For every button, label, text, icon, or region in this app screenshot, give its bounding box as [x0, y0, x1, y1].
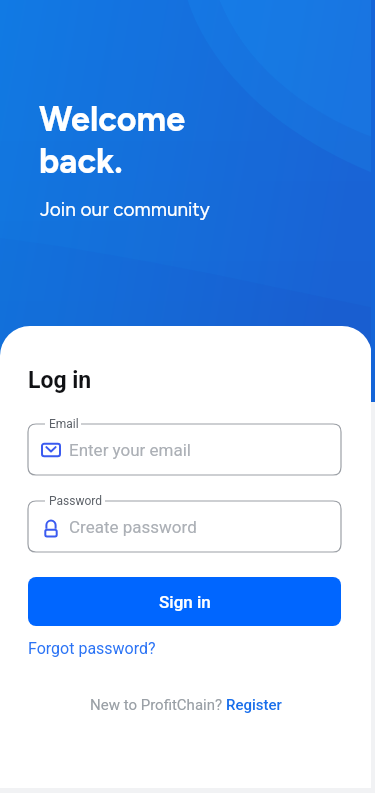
- staticText: Join our community: [40, 198, 210, 221]
- staticText: Log in: [28, 367, 92, 394]
- other: Password: [40, 517, 62, 537]
- staticText: Register: [226, 696, 282, 714]
- staticText: Sign in: [159, 592, 211, 612]
- button[interactable]: Sign in: [28, 577, 341, 626]
- other: Email: [40, 440, 62, 460]
- button[interactable]: Register: [226, 696, 282, 714]
- staticText: Enter your email: [69, 440, 192, 460]
- button[interactable]: Email: [28, 424, 341, 475]
- button[interactable]: Password: [28, 501, 341, 552]
- staticText: Create password: [69, 517, 197, 537]
- staticText: Forgot password?: [28, 639, 156, 658]
- staticText: Password: [49, 494, 103, 508]
- staticText: Welcome back.: [39, 99, 186, 182]
- staticText: Email: [49, 417, 79, 431]
- staticText: New to ProfitChain?: [90, 696, 226, 714]
- button[interactable]: Forgot password?: [28, 639, 156, 658]
